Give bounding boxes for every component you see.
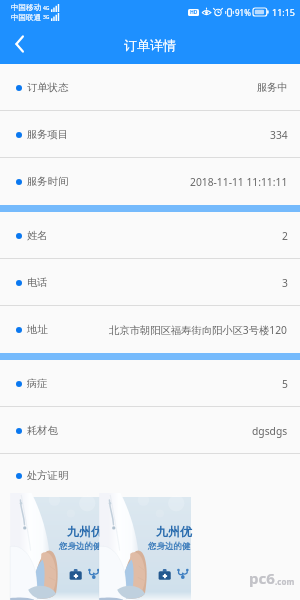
staticText: 地址 <box>27 323 48 336</box>
staticText: 电话 <box>27 276 48 289</box>
staticText: 九州优 <box>156 524 192 539</box>
staticText: 九州优 <box>67 524 103 539</box>
staticText: HD <box>190 9 198 16</box>
button[interactable]: 服务时间 <box>0 158 300 205</box>
button[interactable]: 处方证明 <box>0 454 300 497</box>
button[interactable]: Back <box>0 24 40 64</box>
staticText: .com <box>275 576 295 587</box>
staticText: dgsdgs <box>252 424 288 438</box>
staticText: 服务中 <box>257 81 288 94</box>
staticText: 2 <box>282 229 288 243</box>
staticText: pc6 <box>249 568 275 588</box>
staticText: 您身边的健 <box>148 541 191 552</box>
button[interactable]: 地址 <box>0 306 300 353</box>
staticText: 3G <box>43 14 50 21</box>
button[interactable]: 订单状态 <box>0 64 300 111</box>
staticText: 订单状态 <box>27 81 69 94</box>
staticText: 您身边的健 <box>59 541 102 552</box>
staticText: 中国联通 <box>11 13 41 22</box>
button[interactable]: Prescription photo <box>20 497 102 600</box>
staticText: 3 <box>282 276 288 290</box>
staticText: 中国移动 <box>11 3 41 12</box>
button[interactable]: Prescription photo <box>109 497 191 600</box>
staticText: 订单详情 <box>124 37 176 53</box>
staticText: 服务时间 <box>27 175 69 188</box>
staticText: 北京市朝阳区福寿街向阳小区3号楼120 <box>109 323 288 337</box>
staticText: 姓名 <box>27 229 48 242</box>
staticText: 11:15 <box>272 6 296 18</box>
button[interactable]: 耗材包 <box>0 407 300 454</box>
button[interactable]: 病症 <box>0 360 300 407</box>
staticText: 服务项目 <box>27 128 69 141</box>
button[interactable]: 姓名 <box>0 212 300 259</box>
staticText: 5 <box>282 377 288 391</box>
button[interactable]: 电话 <box>0 259 300 306</box>
staticText: 2018-11-11 11:11:11 <box>190 175 288 189</box>
button[interactable]: 服务项目 <box>0 111 300 158</box>
staticText: 4G <box>43 5 50 12</box>
staticText: 病症 <box>27 377 48 390</box>
staticText: 耗材包 <box>27 424 58 437</box>
staticText: 334 <box>270 128 288 142</box>
staticText: 处方证明 <box>27 469 69 482</box>
staticText: 91% <box>235 7 251 18</box>
